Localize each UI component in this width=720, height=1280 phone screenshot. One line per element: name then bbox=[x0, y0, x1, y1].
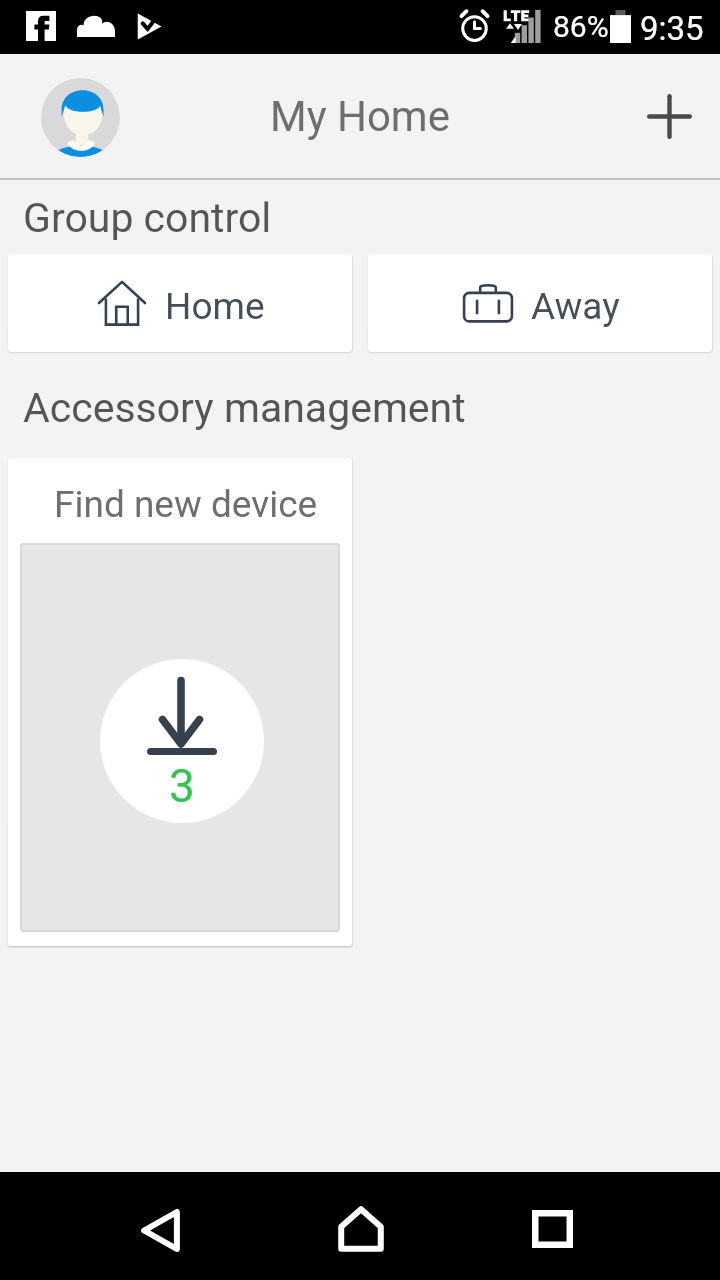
button[interactable]: Away bbox=[368, 254, 712, 352]
staticText: 86% bbox=[553, 9, 609, 44]
staticText: Group control bbox=[23, 194, 272, 242]
button[interactable]: Find new device bbox=[8, 458, 352, 946]
button[interactable]: Back bbox=[100, 1172, 220, 1280]
button[interactable]: Add bbox=[633, 80, 705, 152]
staticText: Home bbox=[165, 285, 265, 328]
button[interactable]: Home bbox=[8, 254, 352, 352]
staticText: Accessory management bbox=[23, 384, 466, 432]
button[interactable]: Profile bbox=[41, 78, 120, 157]
button[interactable]: Home bbox=[301, 1172, 421, 1280]
staticText: My Home bbox=[270, 92, 450, 141]
staticText: Find new device bbox=[54, 483, 318, 526]
staticText: 3 bbox=[169, 759, 195, 813]
staticText: 9:35 bbox=[640, 9, 704, 48]
button[interactable]: Recents bbox=[493, 1172, 613, 1280]
staticText: Away bbox=[531, 285, 620, 328]
